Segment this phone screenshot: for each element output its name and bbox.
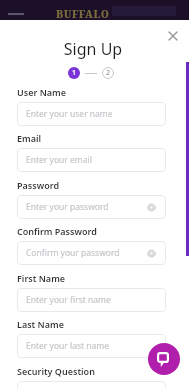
button[interactable]: 1 xyxy=(68,67,80,79)
button[interactable]: Enter your user name xyxy=(17,102,166,126)
button[interactable]: Toggle password visibility xyxy=(144,200,158,214)
button[interactable]: Enter your last name xyxy=(17,334,166,358)
button[interactable]: Select xyxy=(17,381,166,388)
staticText: Confirm Password xyxy=(17,225,97,237)
button[interactable]: Chat xyxy=(148,343,180,375)
button[interactable]: Close xyxy=(165,28,180,43)
staticText: Enter your last name xyxy=(26,340,110,352)
staticText: Enter your user name xyxy=(26,108,113,120)
staticText: Last Name xyxy=(17,318,64,330)
button[interactable]: Toggle password visibility xyxy=(144,246,158,260)
staticText: Enter your first name xyxy=(26,294,111,306)
button[interactable]: Enter your password xyxy=(17,195,166,219)
button[interactable]: Confirm your password xyxy=(17,241,166,265)
button[interactable]: Enter your first name xyxy=(17,288,166,312)
button[interactable]: Enter your email xyxy=(17,148,166,172)
staticText: First Name xyxy=(17,272,66,284)
staticText: 2 xyxy=(106,68,111,78)
staticText: Email xyxy=(17,132,42,144)
staticText: BUFFALO xyxy=(56,7,110,21)
staticText: Security Question xyxy=(17,365,95,377)
staticText: Password xyxy=(17,179,60,191)
staticText: Sign Up xyxy=(0,38,186,60)
staticText: Enter your email xyxy=(26,154,92,166)
staticText: 1 xyxy=(72,68,77,78)
button[interactable]: 2 xyxy=(102,67,114,79)
staticText: Enter your password xyxy=(26,201,109,213)
staticText: Confirm your password xyxy=(26,247,120,259)
staticText: User Name xyxy=(17,86,66,98)
button[interactable]: Menu xyxy=(4,9,28,19)
